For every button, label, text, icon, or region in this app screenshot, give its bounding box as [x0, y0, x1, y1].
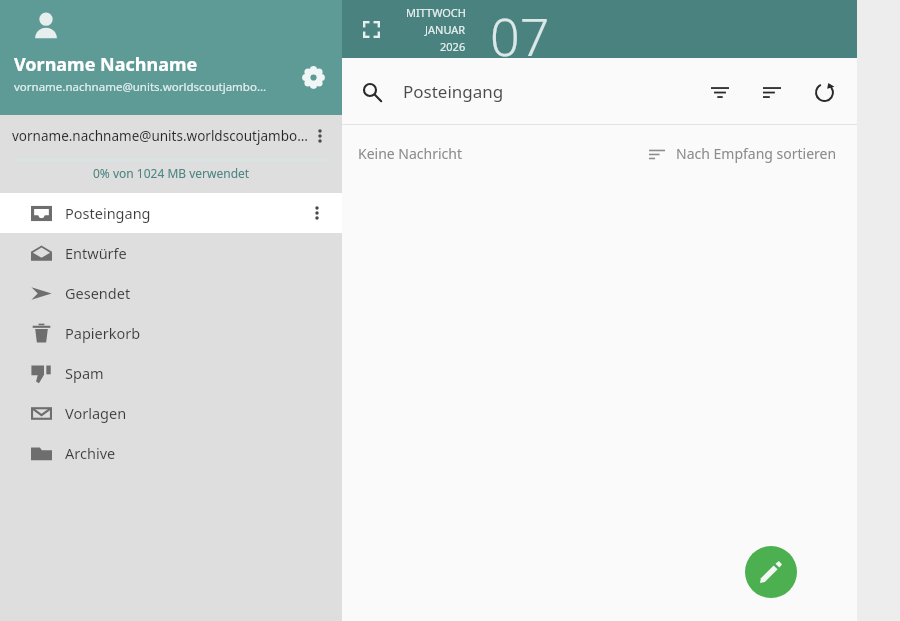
button[interactable]: Posteingang — [0, 193, 342, 233]
button[interactable]: Spam — [0, 353, 342, 393]
staticText: Papierkorb — [65, 323, 141, 343]
button[interactable]: Papierkorb — [0, 313, 342, 353]
staticText: MITTWOCH — [406, 5, 466, 20]
staticText: vorname.nachname@units.worldscoutjambo… — [12, 127, 308, 145]
button[interactable]: Sort — [753, 73, 791, 111]
staticText: 2026 — [440, 39, 466, 54]
staticText: vorname.nachname@units.worldscoutjambo… — [14, 79, 266, 95]
button[interactable]: Nach Empfang sortieren — [645, 140, 841, 167]
button[interactable]: Entwürfe — [0, 233, 342, 273]
staticText: Nach Empfang sortieren — [676, 144, 837, 163]
staticText: 0% von 1024 MB verwendet — [93, 165, 250, 181]
staticText: JANUAR — [425, 22, 466, 37]
button[interactable]: Settings — [297, 61, 329, 93]
button[interactable]: Archive — [0, 433, 342, 473]
staticText: Archive — [65, 443, 116, 463]
staticText: Posteingang — [403, 80, 504, 103]
staticText: Gesendet — [65, 283, 131, 303]
button[interactable]: Refresh — [805, 73, 843, 111]
staticText: 07 — [490, 0, 550, 58]
button[interactable]: Filter — [701, 73, 739, 111]
staticText: Spam — [65, 363, 104, 383]
button[interactable]: Compose — [745, 546, 797, 598]
button[interactable]: Vorlagen — [0, 393, 342, 433]
staticText: Keine Nachricht — [358, 144, 463, 163]
staticText: Vorlagen — [65, 403, 127, 423]
staticText: Entwürfe — [65, 243, 127, 263]
staticText: Posteingang — [65, 203, 151, 223]
button[interactable]: Search — [354, 74, 390, 110]
staticText: Vorname Nachname — [14, 52, 198, 77]
button[interactable]: Gesendet — [0, 273, 342, 313]
button[interactable]: Folder options — [302, 198, 332, 228]
button[interactable]: Account options — [308, 121, 332, 151]
button[interactable]: Fullscreen — [356, 14, 386, 44]
